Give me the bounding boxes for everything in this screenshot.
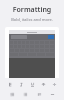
button[interactable]: Bold [6,80,14,88]
button[interactable]: Link [48,90,56,98]
button[interactable]: Underline [28,80,36,88]
button[interactable]: Send [5,27,59,94]
button[interactable]: Strikethrough [39,80,47,88]
button[interactable]: Numbered list [21,90,29,98]
button[interactable]: Italic [17,80,25,88]
button[interactable]: Quote [35,90,43,98]
button[interactable]: Bulleted list [8,90,16,98]
staticText: Formatting [0,5,64,15]
button[interactable]: Code [50,80,58,88]
staticText: Bold, italics and more. [0,17,64,22]
